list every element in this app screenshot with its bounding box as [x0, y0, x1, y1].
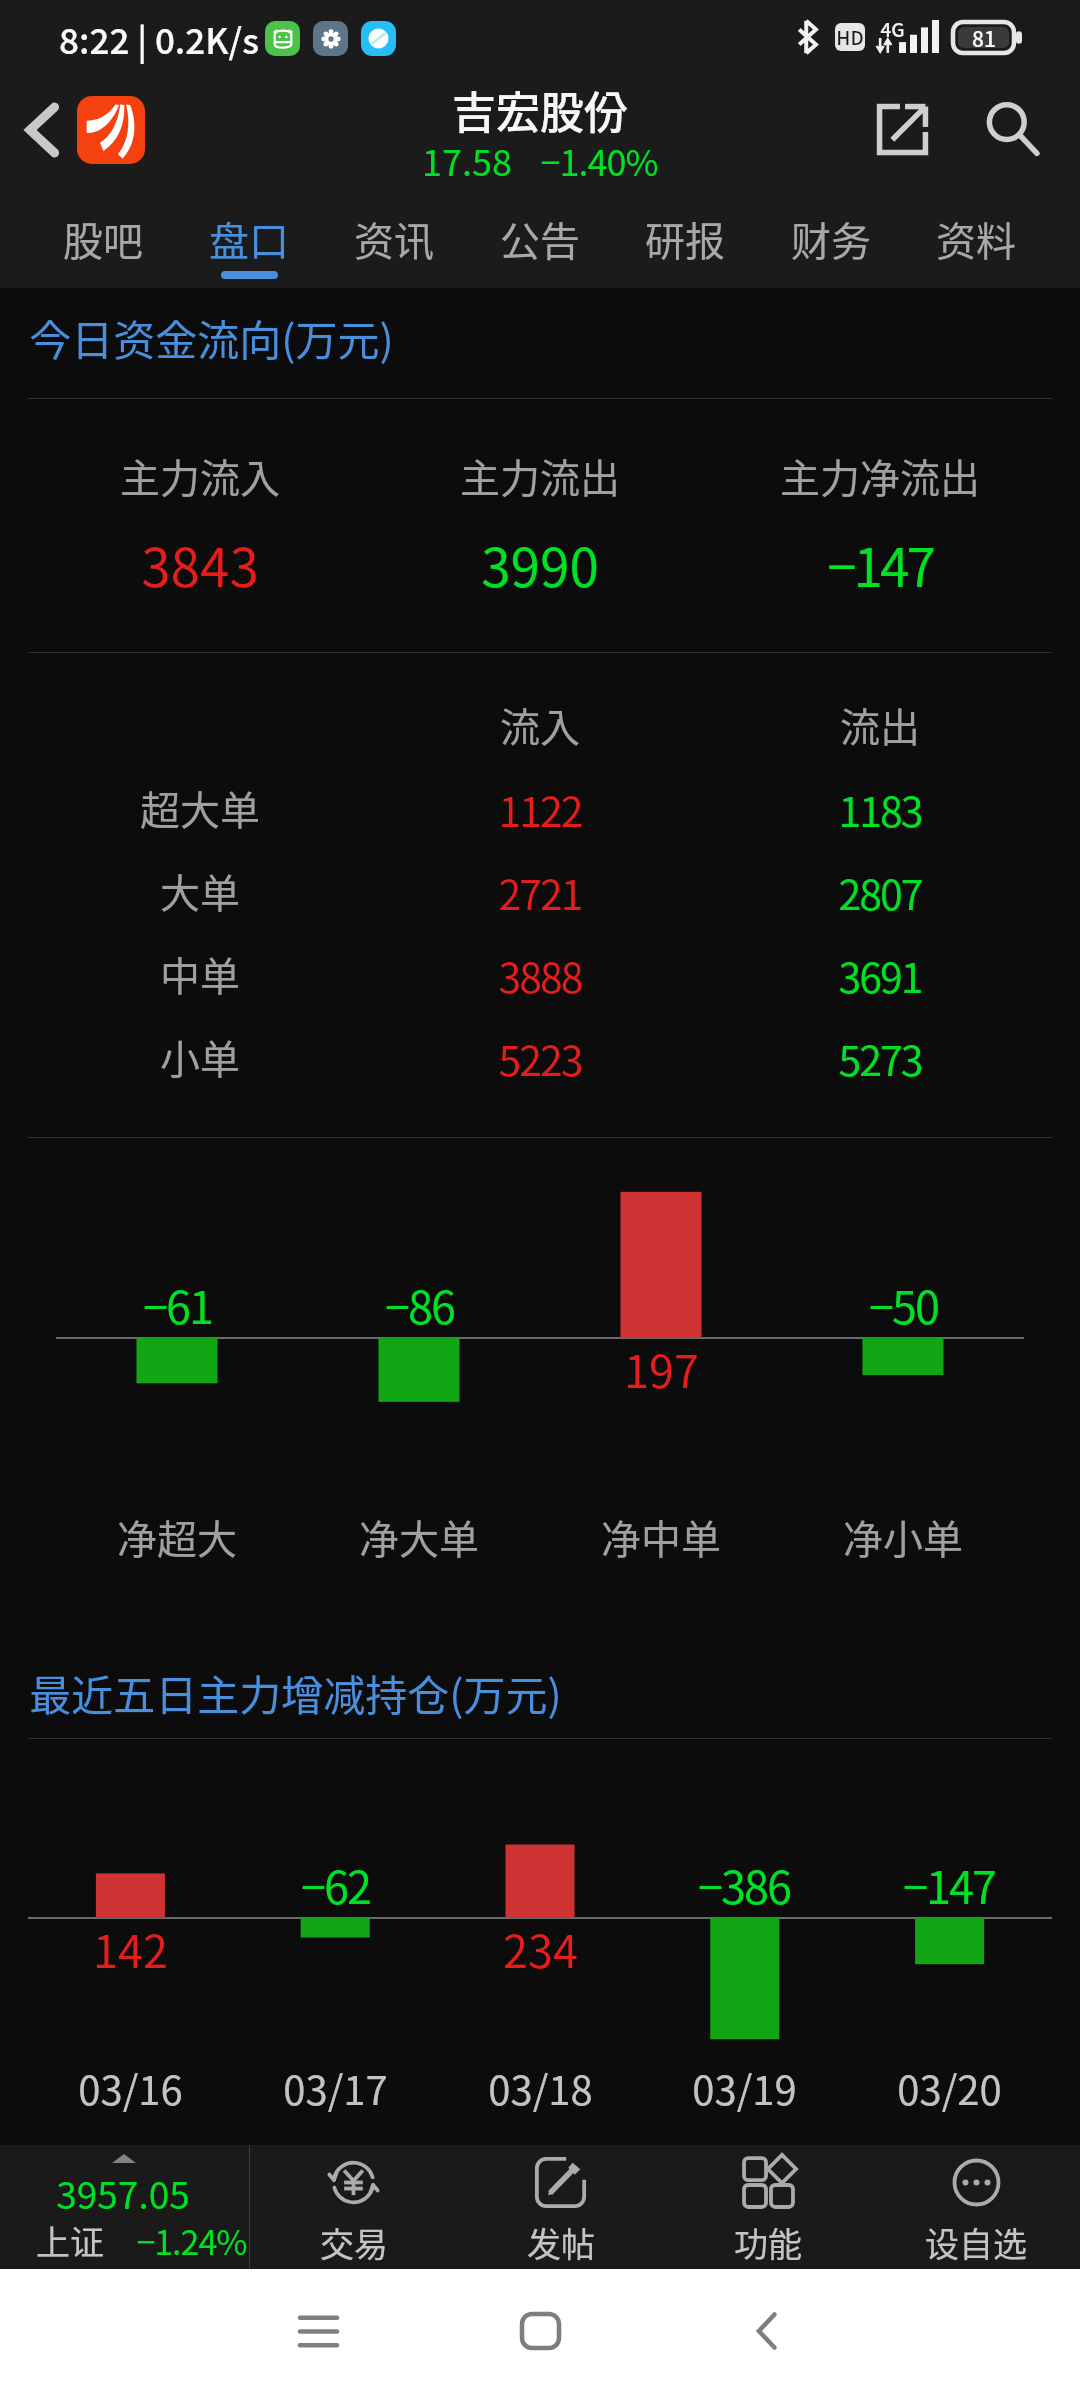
staticText: 设自选: [925, 2218, 1027, 2267]
staticText: −1.40%: [540, 134, 658, 186]
staticText: 流入: [500, 696, 580, 754]
staticText: 03/16: [78, 2059, 183, 2117]
staticText: −1.24%: [136, 2216, 247, 2265]
staticText: 吉宏股份: [452, 78, 628, 142]
staticText: 1122: [498, 779, 582, 838]
button[interactable]: Home: [500, 2291, 580, 2371]
staticText: 净超大: [117, 1508, 237, 1566]
button[interactable]: Recent apps: [278, 2291, 358, 2371]
staticText: 5223: [498, 1028, 582, 1087]
staticText: 研报: [645, 210, 725, 268]
button[interactable]: 设自选: [872, 2145, 1080, 2269]
button[interactable]: Share: [860, 87, 944, 171]
staticText: 03/19: [692, 2059, 797, 2117]
staticText: −386: [698, 1852, 790, 1917]
staticText: 净中单: [601, 1508, 721, 1566]
staticText: −61: [143, 1272, 212, 1337]
staticText: 234: [503, 1916, 578, 1981]
staticText: 发帖: [527, 2218, 595, 2267]
staticText: 资讯: [354, 210, 434, 268]
staticText: 主力流出: [460, 447, 620, 505]
staticText: 资料: [936, 210, 1016, 268]
button[interactable]: 资料: [904, 196, 1048, 288]
staticText: 公告: [500, 210, 580, 268]
button[interactable]: 财务: [759, 196, 903, 288]
staticText: −147: [903, 1852, 995, 1917]
staticText: 盘口: [209, 210, 289, 268]
staticText: 3691: [838, 945, 922, 1004]
staticText: 3957.05: [56, 2166, 190, 2220]
staticText: 流出: [840, 696, 920, 754]
staticText: 03/20: [897, 2059, 1002, 2117]
staticText: 2807: [838, 862, 922, 921]
button[interactable]: 研报: [613, 196, 757, 288]
button[interactable]: 资讯: [322, 196, 466, 288]
staticText: 2721: [498, 862, 582, 921]
staticText: 3888: [498, 945, 582, 1004]
staticText: 净小单: [843, 1508, 963, 1566]
staticText: 主力净流出: [780, 447, 980, 505]
staticText: 股吧: [63, 210, 143, 268]
staticText: 4G: [880, 15, 905, 43]
staticText: HD: [836, 23, 864, 51]
staticText: 1183: [838, 779, 922, 838]
staticText: −50: [869, 1272, 938, 1337]
staticText: −86: [385, 1272, 454, 1337]
button[interactable]: 股吧: [31, 196, 175, 288]
staticText: 197: [624, 1336, 699, 1401]
button[interactable]: 功能: [664, 2145, 872, 2269]
button[interactable]: Back: [0, 88, 84, 172]
staticText: 主力流入: [120, 447, 280, 505]
button[interactable]: 上证指数 3957.05: [0, 2145, 249, 2269]
staticText: 上证: [36, 2216, 104, 2265]
staticText: 最近五日主力增减持仓(万元): [29, 1662, 562, 1723]
staticText: −147: [827, 526, 933, 603]
staticText: 超大单: [140, 779, 260, 837]
staticText: 功能: [734, 2218, 802, 2267]
staticText: 财务: [791, 210, 871, 268]
staticText: 17.58: [422, 134, 512, 186]
staticText: 03/18: [488, 2059, 593, 2117]
staticText: 8:22 | 0.2K/s: [59, 13, 259, 64]
button[interactable]: 盘口: [177, 196, 321, 288]
staticText: 大单: [160, 862, 240, 920]
button[interactable]: 交易: [250, 2145, 457, 2269]
staticText: 今日资金流向(万元): [29, 307, 394, 368]
staticText: 交易: [320, 2218, 388, 2267]
staticText: 小单: [160, 1028, 240, 1086]
button[interactable]: 公告: [468, 196, 612, 288]
staticText: −62: [301, 1852, 370, 1917]
staticText: 81: [972, 23, 996, 53]
staticText: 142: [93, 1916, 168, 1981]
button[interactable]: Back: [726, 2291, 806, 2371]
staticText: 03/17: [283, 2059, 388, 2117]
button[interactable]: 发帖: [457, 2145, 664, 2269]
staticText: 3843: [141, 526, 259, 603]
staticText: 5273: [838, 1028, 922, 1087]
button[interactable]: App home: [77, 96, 145, 164]
staticText: 3990: [481, 526, 599, 603]
staticText: 净大单: [359, 1508, 479, 1566]
staticText: 中单: [160, 945, 240, 1003]
button[interactable]: Search: [970, 87, 1054, 171]
